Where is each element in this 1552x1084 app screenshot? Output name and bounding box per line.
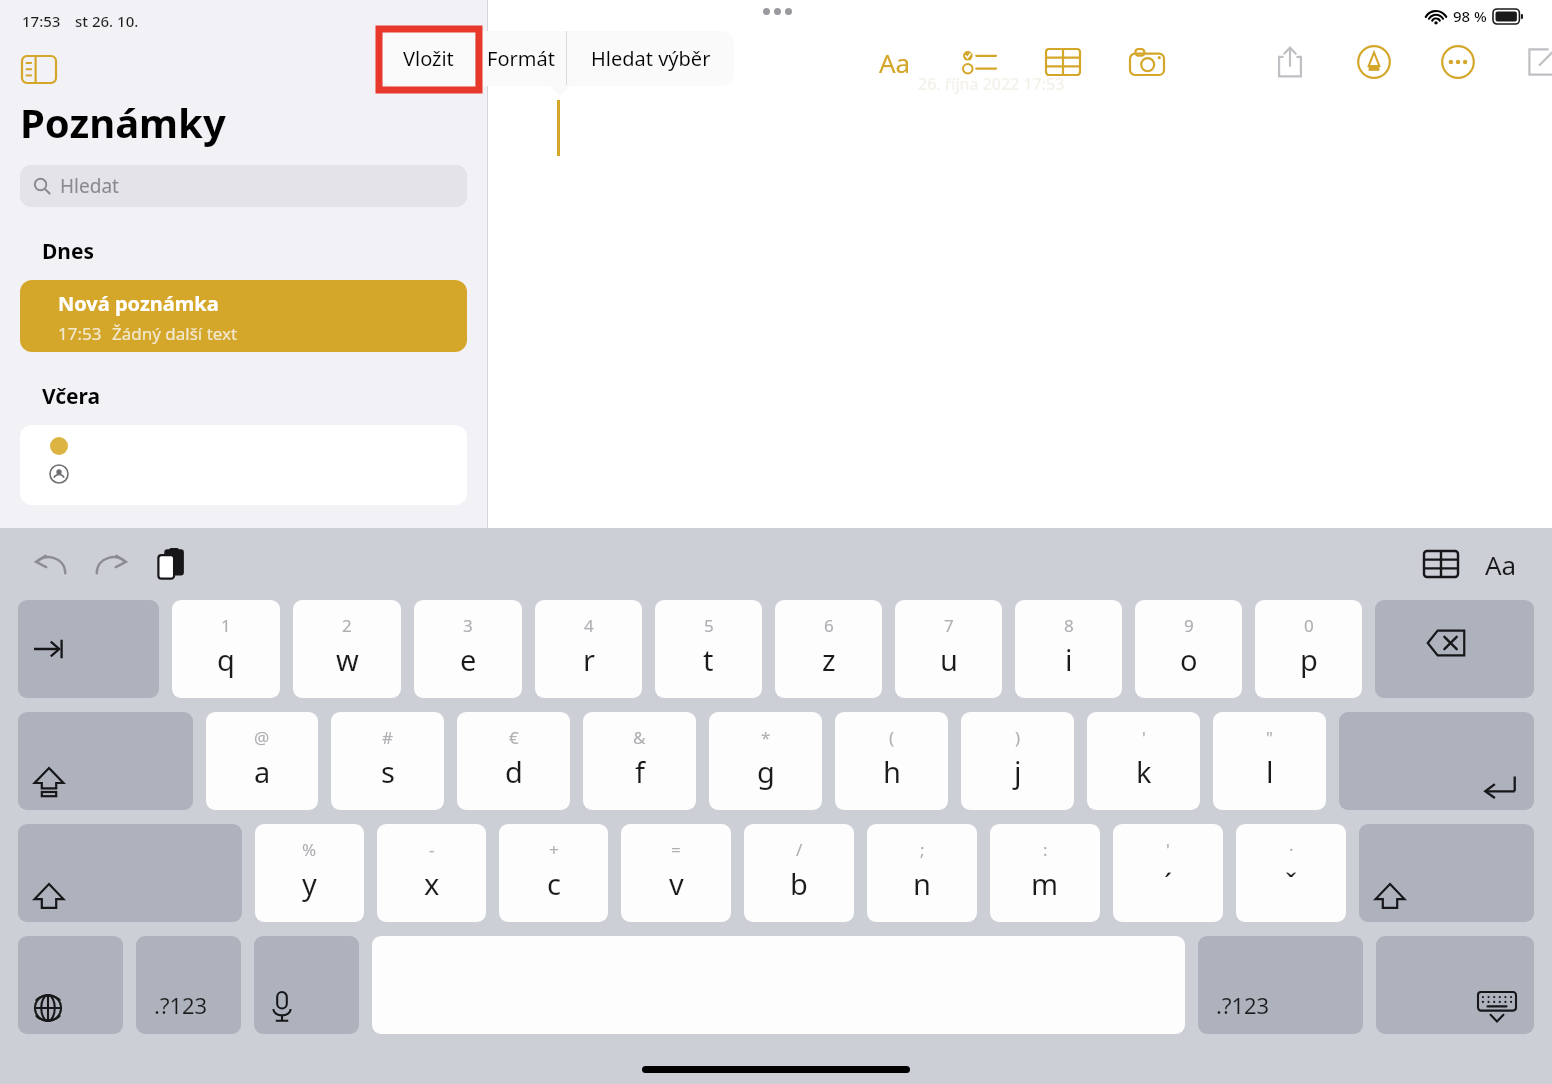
- staticText: 6: [824, 614, 834, 637]
- button[interactable]: More: [1436, 40, 1480, 84]
- button[interactable]: Hledat výběr: [567, 31, 734, 86]
- staticText: =: [671, 838, 681, 861]
- button[interactable]: [20, 425, 467, 505]
- button[interactable]: ': [1087, 712, 1200, 810]
- button[interactable]: .?123: [136, 936, 241, 1034]
- staticText: c: [547, 864, 561, 903]
- staticText: t: [703, 640, 714, 679]
- button[interactable]: Hledat: [20, 165, 467, 207]
- staticText: 17:53: [58, 322, 102, 345]
- button[interactable]: Format: [1478, 541, 1524, 587]
- button[interactable]: 8: [1015, 600, 1122, 698]
- button[interactable]: return: [1339, 712, 1534, 810]
- staticText: ': [1166, 838, 1170, 861]
- button[interactable]: €: [457, 712, 570, 810]
- button[interactable]: 7: [895, 600, 1002, 698]
- staticText: +: [549, 838, 559, 861]
- staticText: 2: [342, 614, 352, 637]
- button[interactable]: mic: [254, 936, 359, 1034]
- button[interactable]: Table: [1041, 40, 1085, 84]
- button[interactable]: 5: [655, 600, 762, 698]
- button[interactable]: Share: [1268, 40, 1312, 84]
- button[interactable]: 9: [1135, 600, 1242, 698]
- button[interactable]: shift: [18, 824, 242, 922]
- staticText: &: [633, 726, 646, 749]
- button[interactable]: #: [331, 712, 444, 810]
- button[interactable]: ): [961, 712, 1074, 810]
- staticText: i: [1065, 640, 1073, 679]
- button[interactable]: 3: [414, 600, 522, 698]
- staticText: u: [940, 640, 958, 679]
- staticText: Žádný další text: [112, 322, 238, 345]
- staticText: €: [509, 726, 519, 749]
- button[interactable]: Paste: [148, 541, 194, 587]
- button[interactable]: Redo: [88, 541, 134, 587]
- staticText: e: [460, 640, 477, 679]
- button[interactable]: ': [1113, 824, 1223, 922]
- staticText: l: [1266, 752, 1274, 791]
- button[interactable]: /: [744, 824, 854, 922]
- button[interactable]: -: [377, 824, 486, 922]
- staticText: %: [302, 838, 317, 861]
- button[interactable]: +: [499, 824, 608, 922]
- staticText: 0: [1304, 614, 1314, 637]
- button[interactable]: Nová poznámka: [20, 280, 467, 352]
- button[interactable]: 0: [1255, 600, 1362, 698]
- button[interactable]: shift: [1359, 824, 1534, 922]
- button[interactable]: hidekb: [1376, 936, 1534, 1034]
- button[interactable]: .?123: [1198, 936, 1363, 1034]
- staticText: ): [1015, 726, 1021, 749]
- button[interactable]: tab: [18, 600, 159, 698]
- staticText: x: [424, 864, 440, 903]
- button[interactable]: globe: [18, 936, 123, 1034]
- button[interactable]: 2: [293, 600, 401, 698]
- button[interactable]: @: [206, 712, 318, 810]
- button[interactable]: *: [709, 712, 822, 810]
- button[interactable]: &: [583, 712, 696, 810]
- button[interactable]: bksp: [1375, 600, 1534, 698]
- staticText: o: [1180, 640, 1198, 679]
- button[interactable]: Undo: [28, 541, 74, 587]
- button[interactable]: %: [255, 824, 364, 922]
- staticText: *: [761, 726, 771, 749]
- staticText: 1: [221, 614, 231, 637]
- button[interactable]: (: [835, 712, 948, 810]
- button[interactable]: caps: [18, 712, 193, 810]
- staticText: h: [883, 752, 901, 791]
- button[interactable]: 4: [535, 600, 642, 698]
- button[interactable]: Table: [1418, 541, 1464, 587]
- staticText: (: [889, 726, 895, 749]
- staticText: 4: [584, 614, 594, 637]
- button[interactable]: Compose: [1520, 40, 1552, 84]
- button[interactable]: ": [1213, 712, 1326, 810]
- button[interactable]: Sidebar: [22, 49, 62, 89]
- button[interactable]: Vložit: [381, 31, 475, 86]
- button[interactable]: ·: [1236, 824, 1346, 922]
- button[interactable]: Checklist: [957, 40, 1001, 84]
- button[interactable]: Formát: [476, 31, 566, 86]
- staticText: Hledat výběr: [591, 45, 711, 72]
- button[interactable]: =: [621, 824, 731, 922]
- button[interactable]: :: [990, 824, 1100, 922]
- button[interactable]: Markup: [1352, 40, 1396, 84]
- button[interactable]: 1: [172, 600, 280, 698]
- staticText: 17:53: [22, 11, 61, 31]
- staticText: Dnes: [42, 237, 95, 266]
- staticText: Formát: [487, 45, 555, 72]
- staticText: ": [1266, 726, 1273, 749]
- staticText: ˇ: [1285, 864, 1298, 903]
- staticText: k: [1136, 752, 1152, 791]
- staticText: Nová poznámka: [58, 290, 219, 317]
- button[interactable]: ;: [867, 824, 977, 922]
- staticText: g: [757, 752, 775, 791]
- button[interactable]: Format: [873, 40, 917, 84]
- button[interactable]: Camera: [1125, 40, 1169, 84]
- staticText: 26. října 2022 17:53: [918, 73, 1065, 95]
- button[interactable]: 6: [775, 600, 882, 698]
- staticText: 9: [1184, 614, 1194, 637]
- staticText: r: [583, 640, 595, 679]
- staticText: v: [669, 864, 684, 903]
- staticText: y: [302, 864, 317, 903]
- staticText: /: [796, 838, 803, 861]
